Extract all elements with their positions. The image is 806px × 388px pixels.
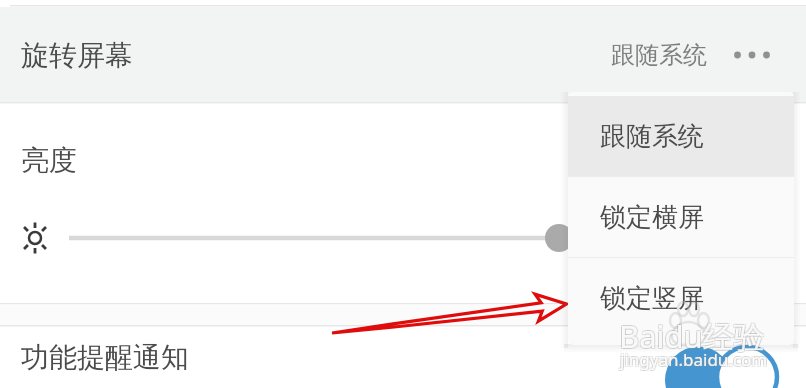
staticText: 锁定横屏 [600,201,704,234]
staticText: 跟随系统 [600,120,704,153]
button[interactable]: 锁定横屏 [568,177,794,257]
button[interactable]: 亮度 [0,120,806,200]
staticText: jingyan.baidu.com [621,347,769,370]
staticText: Baidu经验 [619,315,765,357]
staticText: jingyan.baidu.com [619,347,767,370]
staticText: jingyan.baidu.com [621,349,769,372]
staticText: jingyan.baidu.com [620,348,768,371]
staticText: Baidu经验 [618,314,764,356]
button[interactable]: Brightness slider [0,204,806,272]
button[interactable]: 旋转屏幕 [0,7,806,103]
staticText: 旋转屏幕 [21,38,133,73]
button[interactable]: More options [729,32,775,78]
staticText: 功能提醒通知 [21,340,189,375]
staticText: 亮度 [21,143,77,178]
staticText: 跟随系统 [611,40,707,70]
button[interactable]: 跟随系统 [568,96,794,176]
button[interactable]: 锁定竖屏 [568,258,794,338]
staticText: Baidu经验 [620,316,766,358]
staticText: 锁定竖屏 [600,282,704,315]
staticText: Baidu经验 [618,316,764,358]
staticText: Baidu经验 [620,314,766,356]
button[interactable]: 功能提醒通知 [0,327,806,388]
staticText: jingyan.baidu.com [619,349,767,372]
